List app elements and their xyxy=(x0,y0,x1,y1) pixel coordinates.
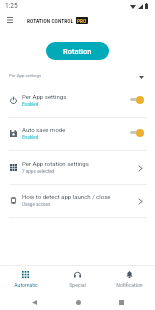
staticText: Auto save mode xyxy=(22,126,66,133)
button[interactable]: Per App settings xyxy=(0,68,155,83)
staticText: 1:25 xyxy=(5,2,18,10)
button[interactable]: Toggle xyxy=(130,128,144,137)
staticText: Notification xyxy=(116,282,143,288)
button[interactable]: Toggle xyxy=(130,95,144,104)
button[interactable]: Back xyxy=(28,296,40,308)
button[interactable]: Recents xyxy=(115,296,127,308)
staticText: ROTATION CONTROL xyxy=(27,18,74,24)
staticText: Rotation xyxy=(63,47,92,56)
button[interactable]: Automatic xyxy=(0,266,51,293)
staticText: Per App settings xyxy=(9,73,42,78)
staticText: Automatic xyxy=(14,282,38,288)
button[interactable]: Notification xyxy=(103,266,155,293)
button[interactable]: Menu xyxy=(3,13,17,27)
button[interactable]: How to detect app launch / close xyxy=(0,184,155,218)
staticText: Per App rotation settings xyxy=(22,160,89,167)
button[interactable]: Auto save mode xyxy=(0,117,155,151)
staticText: Usage access xyxy=(22,202,51,207)
staticText: How to detect app launch / close xyxy=(22,193,111,200)
staticText: Enabled xyxy=(22,135,39,140)
button[interactable]: Per App settings xyxy=(0,84,155,118)
staticText: Special xyxy=(69,282,86,288)
button[interactable]: Per App rotation settings xyxy=(0,151,155,185)
staticText: PRO xyxy=(77,18,87,24)
button[interactable]: Rotation xyxy=(46,42,109,60)
staticText: 7 apps selected xyxy=(22,169,55,174)
button[interactable]: Special xyxy=(51,266,103,293)
staticText: Per App settings xyxy=(22,93,67,100)
button[interactable]: Home xyxy=(72,296,84,308)
staticText: Enabled xyxy=(22,102,39,107)
